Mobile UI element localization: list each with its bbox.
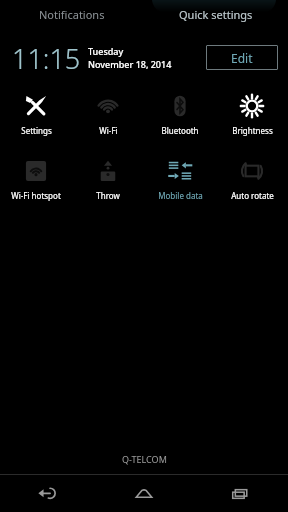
staticText: November 18, 2014: [88, 58, 172, 70]
button[interactable]: Quick settings: [144, 0, 288, 28]
button[interactable]: Settings: [0, 86, 72, 151]
staticText: Auto rotate: [231, 190, 274, 201]
staticText: Notifications: [39, 7, 105, 22]
button[interactable]: Wi-Fi hotspot: [0, 151, 72, 216]
button[interactable]: Mobile data: [144, 151, 216, 216]
button[interactable]: Back: [0, 475, 96, 512]
staticText: Settings: [21, 125, 52, 136]
staticText: Q-TELCOM: [122, 453, 167, 465]
staticText: Quick settings: [179, 7, 253, 22]
staticText: Edit: [231, 50, 253, 66]
staticText: Throw: [96, 190, 120, 201]
button[interactable]: Throw: [72, 151, 144, 216]
staticText: Brightness: [232, 125, 273, 136]
staticText: Bluetooth: [161, 125, 199, 136]
staticText: Wi-Fi: [99, 125, 118, 136]
button[interactable]: Edit: [206, 45, 278, 70]
button[interactable]: Brightness: [216, 86, 288, 151]
button[interactable]: Notifications: [0, 0, 144, 28]
button[interactable]: Wi-Fi: [72, 86, 144, 151]
button[interactable]: Auto rotate: [216, 151, 288, 216]
button[interactable]: Home: [96, 475, 192, 512]
staticText: 11:15: [12, 40, 81, 74]
button[interactable]: Recents: [192, 475, 288, 512]
button[interactable]: Bluetooth: [144, 86, 216, 151]
staticText: Tuesday: [88, 45, 124, 57]
staticText: Mobile data: [158, 190, 203, 201]
staticText: Wi-Fi hotspot: [11, 190, 61, 201]
